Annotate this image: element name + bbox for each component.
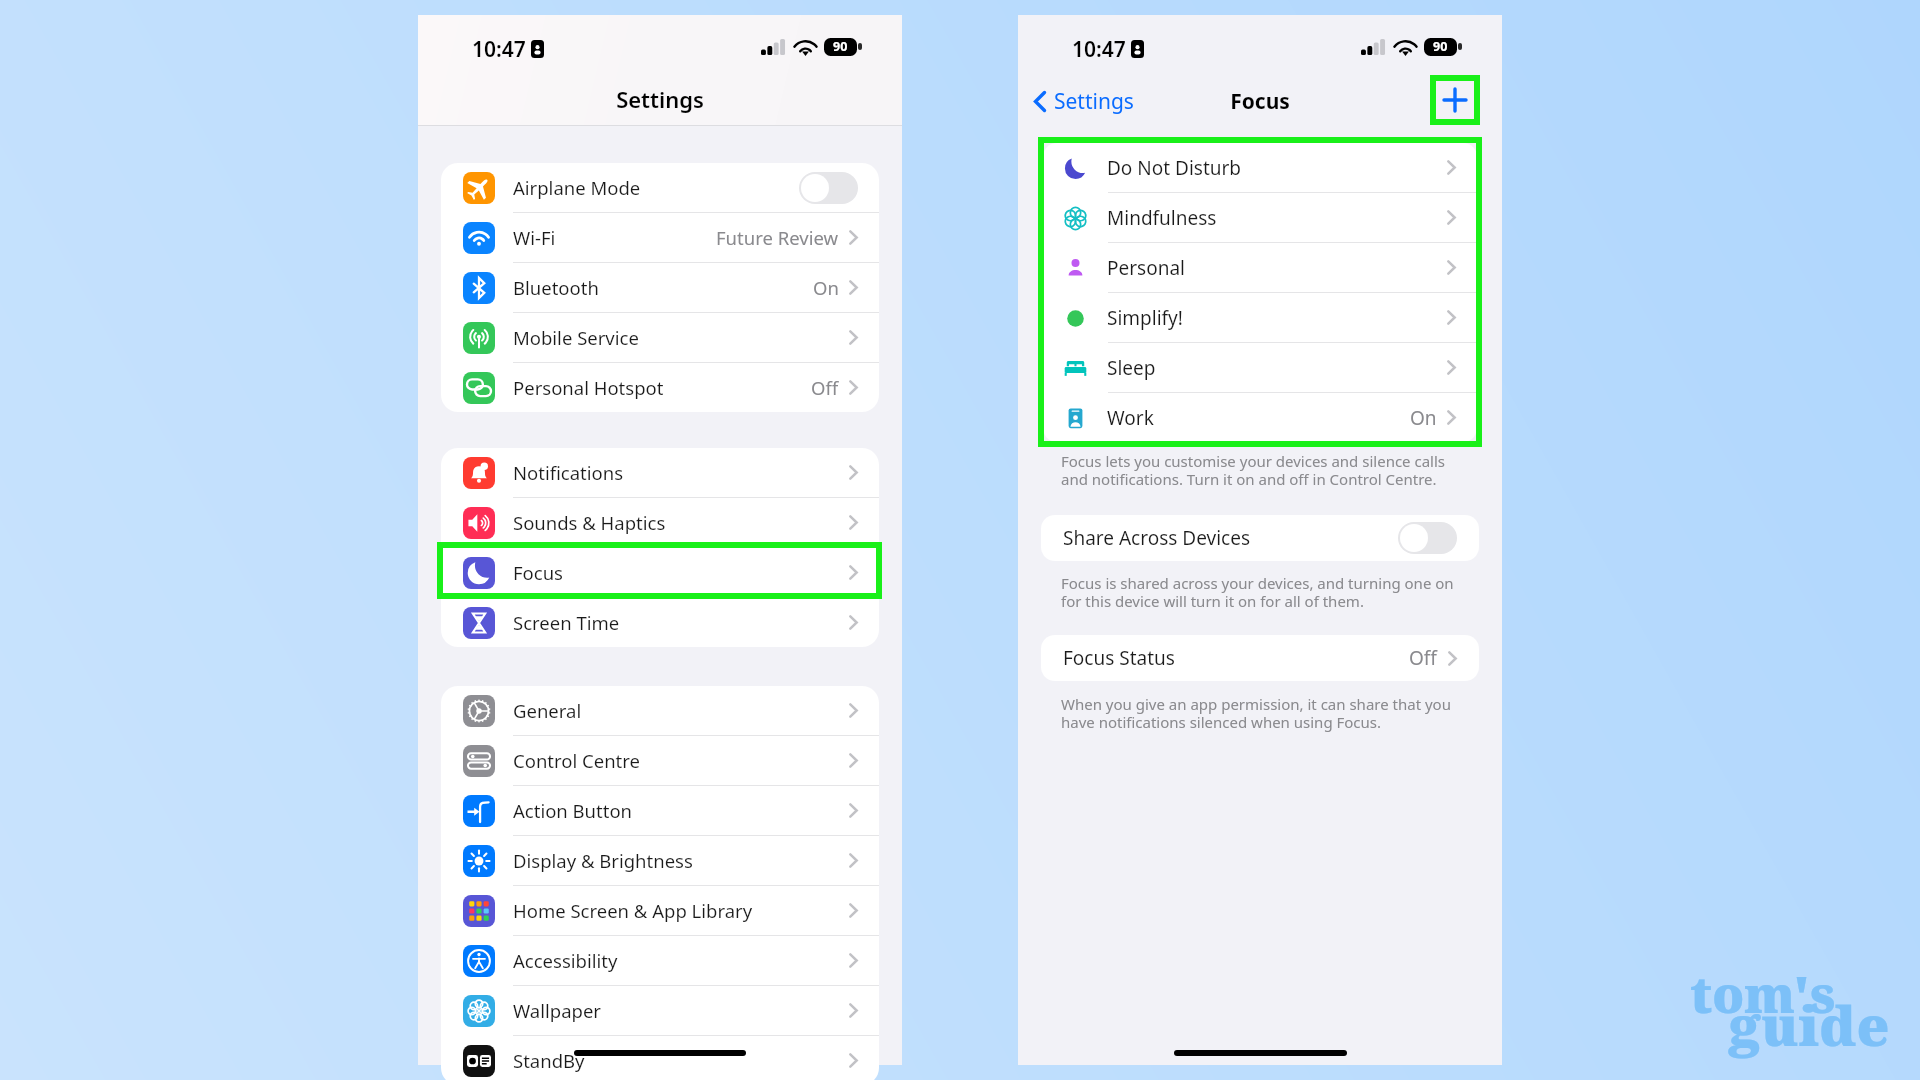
button[interactable]: Action Button	[441, 786, 879, 836]
staticText: Wallpaper	[513, 998, 601, 1023]
button[interactable]: Control Centre	[441, 736, 879, 786]
staticText: guide	[1729, 987, 1890, 1062]
button[interactable]: StandBy	[441, 1036, 879, 1080]
button[interactable]: Mobile Service	[441, 313, 879, 363]
staticText: Mindfulness	[1107, 205, 1217, 231]
staticText: Off	[811, 375, 839, 400]
button[interactable]: Wi-Fi	[441, 213, 879, 263]
staticText: Display & Brightness	[513, 848, 693, 873]
staticText: tom's	[1690, 960, 1836, 1028]
button[interactable]: Personal	[1043, 243, 1477, 293]
staticText: On	[813, 275, 839, 300]
staticText: Share Across Devices	[1063, 525, 1251, 551]
staticText: Wi-Fi	[513, 225, 556, 250]
staticText: Work	[1107, 405, 1154, 431]
staticText: Sleep	[1107, 355, 1156, 381]
staticText: On	[1410, 405, 1437, 431]
staticText: Settings	[1054, 87, 1134, 116]
staticText: General	[513, 698, 582, 723]
staticText: StandBy	[513, 1048, 585, 1073]
staticText: Focus	[1018, 87, 1502, 116]
staticText: Focus lets you customise your devices an…	[1061, 451, 1481, 490]
staticText: Personal	[1107, 255, 1185, 281]
button[interactable]: Focus Status	[1041, 635, 1479, 681]
button[interactable]: Do Not Disturb	[1043, 143, 1477, 193]
staticText: Action Button	[513, 798, 633, 823]
staticText: Simplify!	[1107, 305, 1183, 331]
staticText: Focus	[513, 560, 563, 585]
staticText: Accessibility	[513, 948, 618, 973]
button[interactable]: Focus	[441, 548, 879, 598]
staticText: Screen Time	[513, 610, 620, 635]
staticText: Do Not Disturb	[1107, 155, 1242, 181]
button[interactable]: Airplane Mode	[441, 163, 879, 213]
button[interactable]: Display & Brightness	[441, 836, 879, 886]
staticText: Airplane Mode	[513, 175, 641, 200]
staticText: Personal Hotspot	[513, 375, 664, 400]
button[interactable]: Notifications	[441, 448, 879, 498]
button[interactable]: Screen Time	[441, 598, 879, 647]
button[interactable]: Settings	[1026, 76, 1142, 126]
staticText: Mobile Service	[513, 325, 639, 350]
button[interactable]: Add Focus	[1430, 75, 1480, 125]
button[interactable]: Share Across Devices	[1041, 515, 1479, 561]
button[interactable]: Sleep	[1043, 343, 1477, 393]
staticText: When you give an app permission, it can …	[1061, 694, 1481, 733]
staticText: 10:47	[472, 35, 526, 64]
staticText: Focus is shared across your devices, and…	[1061, 573, 1481, 612]
staticText: Focus Status	[1063, 645, 1175, 671]
button[interactable]: Personal Hotspot	[441, 363, 879, 412]
staticText: Notifications	[513, 460, 624, 485]
staticText: Settings	[418, 84, 902, 114]
staticText: 10:47	[1072, 35, 1126, 64]
button[interactable]: General	[441, 686, 879, 736]
button[interactable]: Mindfulness	[1043, 193, 1477, 243]
staticText: Home Screen & App Library	[513, 898, 753, 923]
button[interactable]: Accessibility	[441, 936, 879, 986]
staticText: Sounds & Haptics	[513, 510, 666, 535]
staticText: Future Review	[716, 225, 839, 250]
button[interactable]: Home Screen & App Library	[441, 886, 879, 936]
staticText: 90	[1433, 38, 1448, 55]
staticText: 90	[833, 38, 848, 55]
staticText: Off	[1409, 645, 1437, 671]
staticText: Control Centre	[513, 748, 640, 773]
button[interactable]: Sounds & Haptics	[441, 498, 879, 548]
button[interactable]: Simplify!	[1043, 293, 1477, 343]
button[interactable]: Work	[1043, 393, 1477, 442]
staticText: Bluetooth	[513, 275, 599, 300]
button[interactable]: Wallpaper	[441, 986, 879, 1036]
button[interactable]: Bluetooth	[441, 263, 879, 313]
